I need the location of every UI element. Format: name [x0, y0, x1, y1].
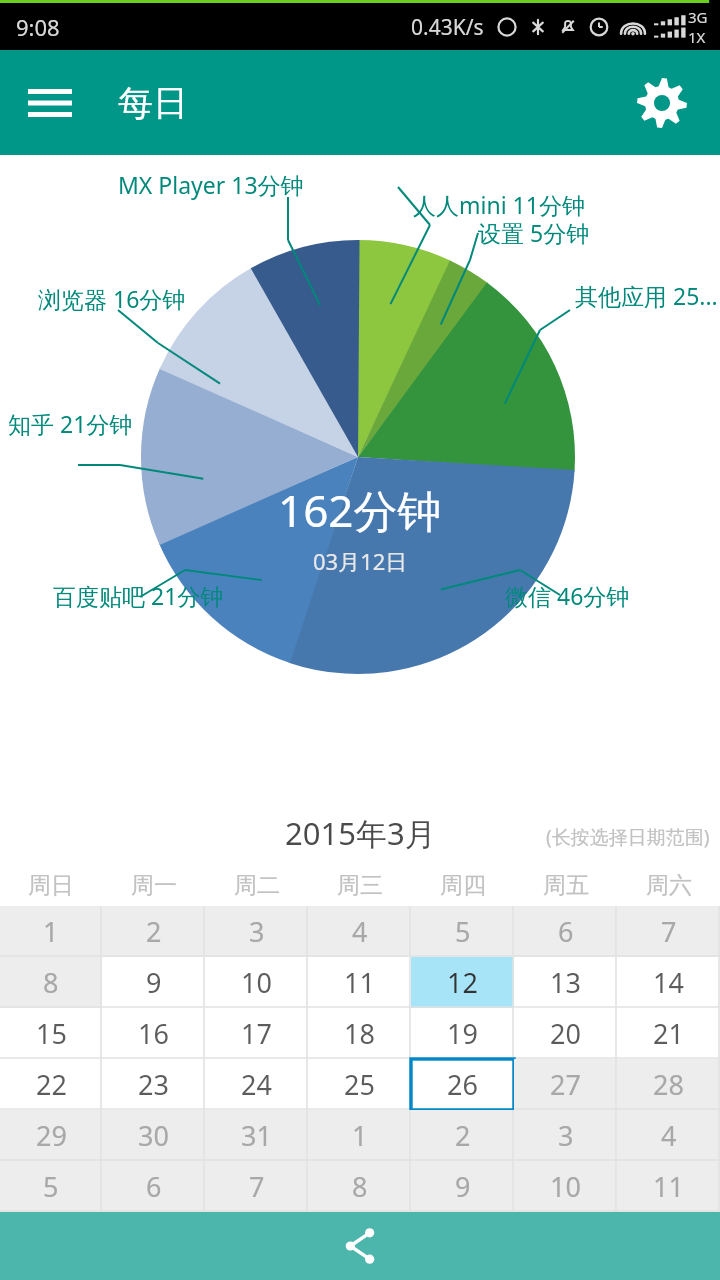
button[interactable]: 29	[0, 1110, 102, 1161]
button[interactable]: 16	[102, 1008, 205, 1059]
staticText: 26	[447, 1066, 478, 1103]
staticText: 14	[653, 964, 684, 1001]
staticText: 162分钟	[278, 480, 442, 540]
staticText: 0.43K/s	[411, 13, 484, 42]
button[interactable]: 10	[205, 957, 308, 1008]
button[interactable]: 2	[102, 906, 205, 957]
staticText: 人人mini 11分钟	[413, 189, 585, 220]
staticText: 知乎 21分钟	[8, 408, 133, 439]
staticText: 16	[138, 1015, 169, 1052]
staticText: 30	[138, 1117, 169, 1154]
button[interactable]: 5	[411, 906, 514, 957]
button[interactable]: 3	[514, 1110, 617, 1161]
staticText: 周四	[440, 871, 486, 900]
button[interactable]: 23	[102, 1059, 205, 1110]
staticText: 其他应用 25...	[575, 280, 718, 311]
button[interactable]: 1	[0, 906, 102, 957]
button[interactable]: 5	[0, 1161, 102, 1212]
staticText: 8	[352, 1168, 368, 1205]
staticText: 微信 46分钟	[505, 580, 630, 611]
button[interactable]: 6	[514, 906, 617, 957]
staticText: 1	[43, 913, 59, 950]
button[interactable]: 11	[617, 1161, 720, 1212]
button[interactable]: 7	[205, 1161, 308, 1212]
staticText: 13	[550, 964, 581, 1001]
staticText: 19	[447, 1015, 478, 1052]
staticText: 22	[36, 1066, 67, 1103]
staticText: 11	[653, 1168, 684, 1205]
staticText: 9	[146, 964, 162, 1001]
button[interactable]: 4	[617, 1110, 720, 1161]
button[interactable]: Settings	[630, 71, 694, 135]
staticText: 5	[455, 913, 471, 950]
staticText: 周二	[234, 871, 280, 900]
button[interactable]: 10	[514, 1161, 617, 1212]
button[interactable]: 12	[411, 957, 514, 1008]
staticText: 周日	[28, 871, 74, 900]
staticText: 17	[241, 1015, 272, 1052]
staticText: 周三	[337, 871, 383, 900]
staticText: 29	[36, 1117, 67, 1154]
staticText: 03月12日	[313, 546, 408, 576]
staticText: 10	[550, 1168, 581, 1205]
button[interactable]: 8	[0, 957, 102, 1008]
staticText: 1	[352, 1117, 368, 1154]
staticText: 设置 5分钟	[478, 217, 590, 248]
staticText: 周六	[646, 871, 692, 900]
staticText: 12	[447, 964, 478, 1001]
button[interactable]: Share	[0, 1212, 720, 1280]
button[interactable]: 18	[308, 1008, 411, 1059]
staticText: 3	[249, 913, 265, 950]
button[interactable]: 7	[617, 906, 720, 957]
staticText: 2	[146, 913, 162, 950]
button[interactable]: 9	[411, 1161, 514, 1212]
staticText: 9	[455, 1168, 471, 1205]
staticText: 8	[43, 964, 59, 1001]
button[interactable]: 30	[102, 1110, 205, 1161]
staticText: 28	[653, 1066, 684, 1103]
button[interactable]: 31	[205, 1110, 308, 1161]
staticText: 23	[138, 1066, 169, 1103]
staticText: 7	[661, 913, 677, 950]
button[interactable]: 8	[308, 1161, 411, 1212]
button[interactable]: 24	[205, 1059, 308, 1110]
staticText: 周五	[543, 871, 589, 900]
button[interactable]: 13	[514, 957, 617, 1008]
button[interactable]: 1	[308, 1110, 411, 1161]
button[interactable]: 15	[0, 1008, 102, 1059]
staticText: 24	[241, 1066, 272, 1103]
staticText: 百度贴吧 21分钟	[53, 580, 224, 611]
button[interactable]: 3	[205, 906, 308, 957]
button[interactable]: 4	[308, 906, 411, 957]
button[interactable]: 21	[617, 1008, 720, 1059]
staticText: 15	[36, 1015, 67, 1052]
staticText: 4	[352, 913, 368, 950]
button[interactable]: 6	[102, 1161, 205, 1212]
button[interactable]: 11	[308, 957, 411, 1008]
button[interactable]: 17	[205, 1008, 308, 1059]
button[interactable]: Menu	[22, 75, 78, 131]
button[interactable]: 26	[411, 1059, 514, 1110]
button[interactable]: 9	[102, 957, 205, 1008]
button[interactable]: 2	[411, 1110, 514, 1161]
staticText: 周一	[131, 871, 177, 900]
button[interactable]: 22	[0, 1059, 102, 1110]
staticText: 7	[249, 1168, 265, 1205]
staticText: 3	[558, 1117, 574, 1154]
staticText: 4	[661, 1117, 677, 1154]
button[interactable]: 28	[617, 1059, 720, 1110]
button[interactable]: 20	[514, 1008, 617, 1059]
staticText: 1X	[688, 27, 706, 47]
staticText: 6	[558, 913, 574, 950]
button[interactable]: 27	[514, 1059, 617, 1110]
staticText: 10	[241, 964, 272, 1001]
button[interactable]: 14	[617, 957, 720, 1008]
staticText: 20	[550, 1015, 581, 1052]
staticText: 11	[344, 964, 375, 1001]
button[interactable]: 19	[411, 1008, 514, 1059]
staticText: 每日	[118, 81, 188, 125]
button[interactable]: 25	[308, 1059, 411, 1110]
staticText: 3G	[688, 7, 708, 27]
staticText: 9:08	[16, 12, 60, 42]
staticText: 2015年3月	[285, 812, 436, 854]
